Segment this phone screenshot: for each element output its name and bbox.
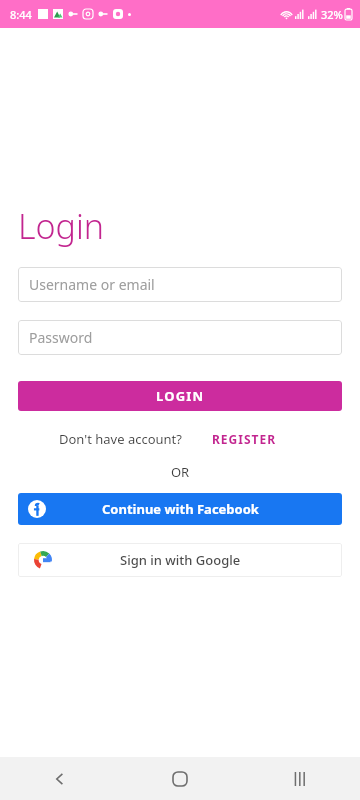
- staticText: LOGIN: [156, 387, 205, 405]
- button[interactable]: LOGIN: [18, 381, 342, 411]
- staticText: REGISTER: [212, 431, 277, 447]
- staticText: OR: [18, 463, 342, 481]
- staticText: Login: [18, 203, 105, 249]
- staticText: Password: [29, 328, 93, 347]
- staticText: 8:44: [10, 7, 32, 22]
- button[interactable]: Password: [18, 320, 342, 355]
- staticText: Sign in with Google: [120, 551, 241, 569]
- staticText: 32%: [321, 7, 343, 22]
- button[interactable]: Recent apps: [240, 757, 360, 800]
- staticText: Continue with Facebook: [102, 500, 259, 518]
- button[interactable]: Back: [0, 757, 120, 800]
- staticText: Don't have account?: [59, 430, 182, 448]
- button[interactable]: REGISTER: [186, 425, 302, 453]
- button[interactable]: Sign in with Google: [18, 543, 342, 577]
- button[interactable]: Username or email: [18, 267, 342, 302]
- staticText: Username or email: [29, 275, 155, 294]
- button[interactable]: Home: [120, 757, 240, 800]
- button[interactable]: Continue with Facebook: [18, 493, 342, 525]
